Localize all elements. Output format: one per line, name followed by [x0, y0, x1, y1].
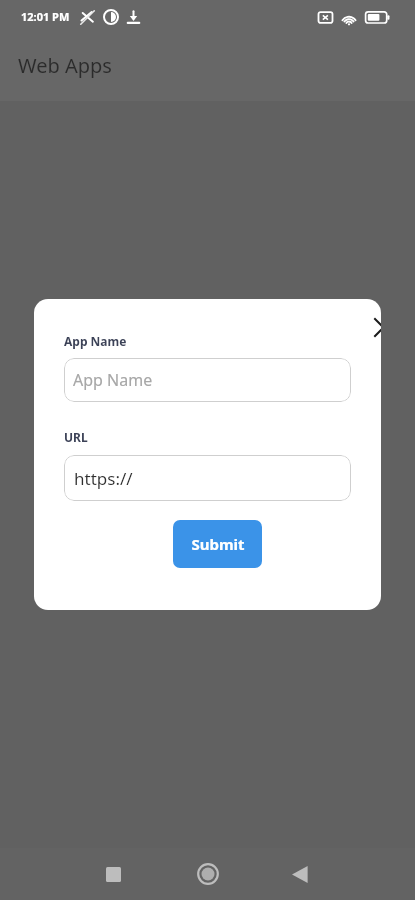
button[interactable]: Recent apps	[89, 850, 137, 898]
button[interactable]: Close	[361, 305, 381, 349]
button[interactable]: Back	[276, 850, 324, 898]
staticText: https://	[74, 467, 133, 490]
button[interactable]: App Name	[64, 358, 351, 402]
staticText: Submit	[191, 534, 245, 554]
button[interactable]: Home	[184, 850, 232, 898]
staticText: URL	[64, 429, 88, 445]
button[interactable]: https://	[64, 455, 351, 501]
staticText: 12:01 PM	[21, 9, 70, 24]
staticText: App Name	[64, 333, 127, 349]
button[interactable]: Submit	[173, 520, 262, 568]
staticText: Web Apps	[18, 52, 112, 79]
staticText: App Name	[73, 369, 153, 391]
